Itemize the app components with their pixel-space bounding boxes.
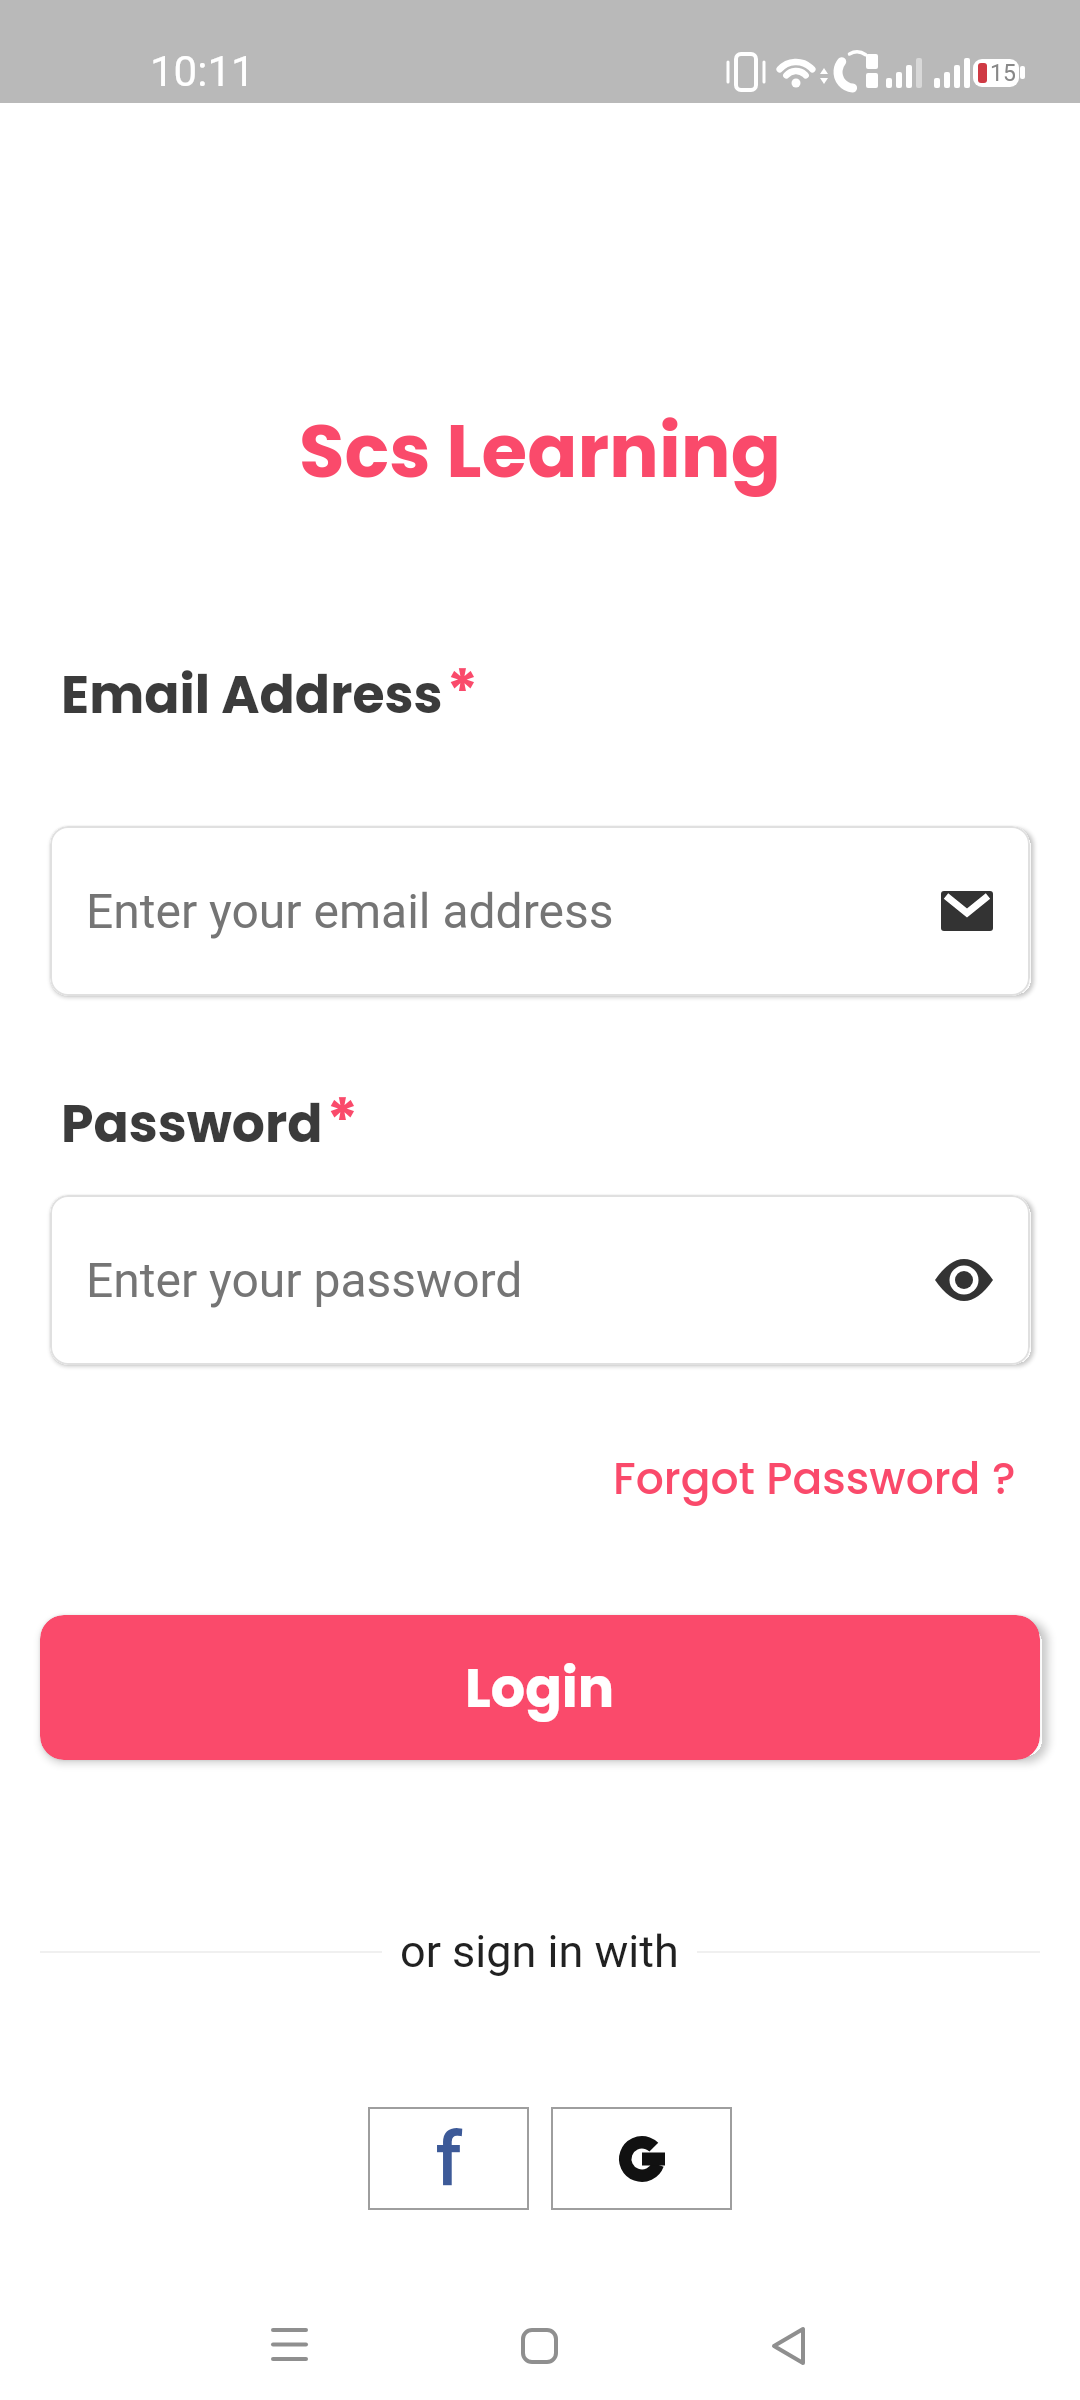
button[interactable] — [495, 2300, 585, 2390]
staticText: Email Address * — [61, 650, 479, 734]
button[interactable]: Login — [40, 1615, 1040, 1760]
button[interactable] — [203, 2300, 293, 2390]
staticText: Password * — [61, 1079, 359, 1163]
staticText: Scs Learning — [0, 399, 1080, 503]
staticText: Enter your email address — [86, 883, 941, 939]
staticText: Enter your password — [86, 1252, 935, 1308]
staticText: or sign in with — [400, 1925, 679, 1978]
staticText: 15 — [990, 60, 1016, 87]
button[interactable]: Forgot Password ? — [613, 1448, 1016, 1510]
button[interactable] — [551, 2107, 732, 2210]
button[interactable]: Enter your email address — [50, 826, 1030, 996]
staticText: f — [436, 2117, 462, 2201]
button[interactable]: Enter your password — [50, 1195, 1030, 1365]
staticText: 10:11 — [150, 47, 255, 96]
staticText: Login — [465, 1650, 615, 1726]
button[interactable] — [788, 2300, 878, 2390]
button[interactable]: f — [368, 2107, 529, 2210]
